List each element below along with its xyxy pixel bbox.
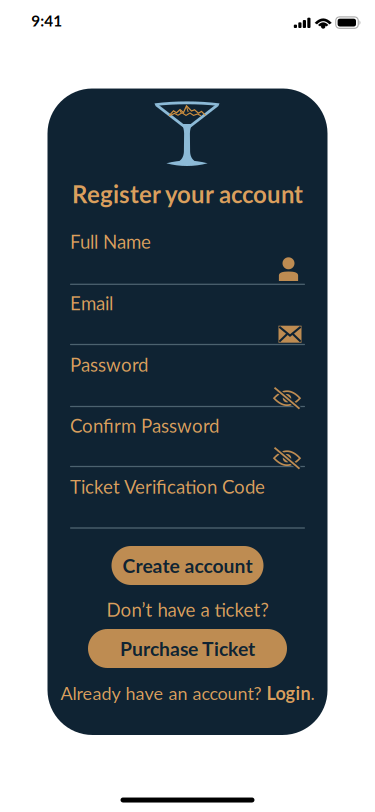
staticText: Confirm Password <box>70 414 219 437</box>
button[interactable]: Already have an account? <box>60 682 314 704</box>
button[interactable]: Purchase Ticket <box>88 629 287 668</box>
staticText: Password <box>70 353 148 376</box>
button[interactable]: Create account <box>111 546 263 585</box>
staticText: Email <box>70 292 113 314</box>
staticText: Register your account <box>72 180 303 208</box>
staticText: . <box>310 682 314 704</box>
staticText: Create account <box>122 554 252 577</box>
staticText: Full Name <box>70 230 151 253</box>
staticText: Login <box>266 682 310 704</box>
staticText: Ticket Verification Code <box>70 475 265 498</box>
staticText: Already have an account? <box>60 682 266 704</box>
staticText: Purchase Ticket <box>120 637 255 660</box>
staticText: 9:41 <box>31 11 62 30</box>
staticText: Don’t have a ticket? <box>106 598 268 621</box>
